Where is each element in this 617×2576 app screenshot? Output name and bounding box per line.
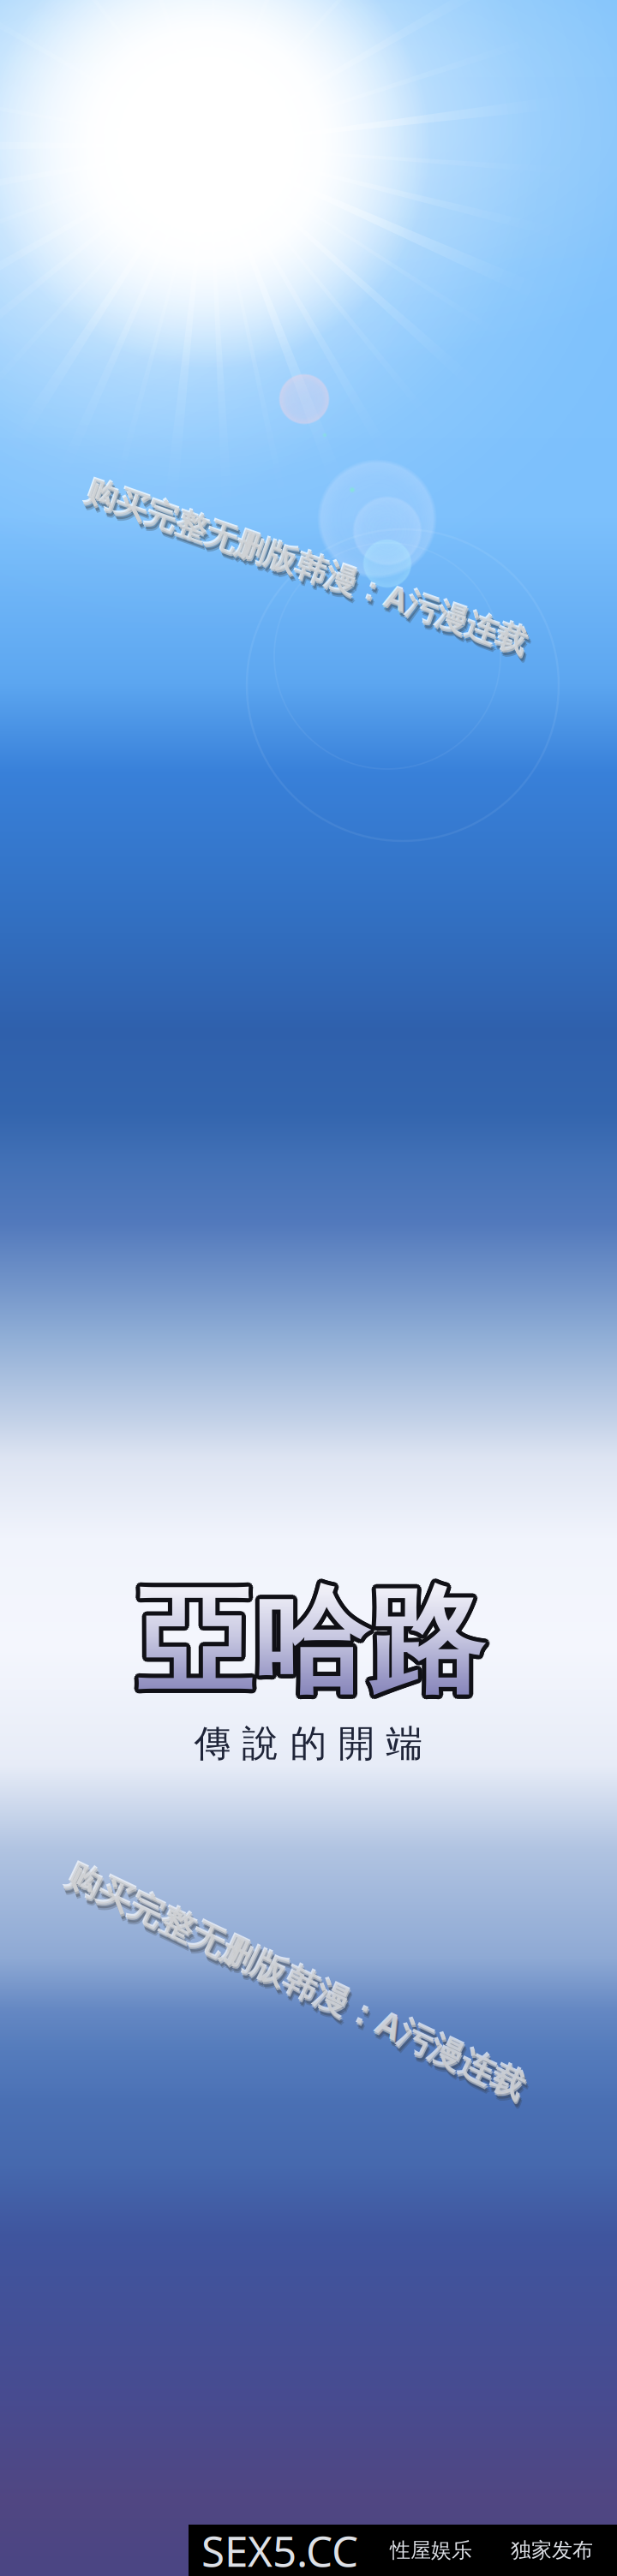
staticText: 亞哈路 <box>135 1576 482 1717</box>
staticText: 购买完整无删版韩漫：A污漫连载 <box>78 549 544 592</box>
staticText: 购买完整无删版韩漫：A污漫连载 <box>44 1957 548 2003</box>
staticText: 购买完整无删版韩漫：A污漫连载 <box>49 1962 553 2008</box>
staticText: 亞哈路 <box>138 1568 485 1709</box>
staticText: 亞哈路 <box>141 1573 488 1715</box>
staticText: 购买完整无删版韩漫：A污漫连载 <box>47 1961 551 2006</box>
staticText: 亞哈路 <box>141 1572 488 1713</box>
staticText: 亞哈路 <box>137 1576 484 1718</box>
button[interactable]: SEX5.CC 性屋娱乐 独家发布 <box>189 2525 617 2576</box>
staticText: 购买完整无删版韩漫：A污漫连载 <box>77 548 543 590</box>
staticText: 亞哈路 <box>134 1572 481 1713</box>
staticText: 购买完整无删版韩漫：A污漫连载 <box>75 546 541 588</box>
staticText: 亞哈路 <box>133 1570 480 1712</box>
staticText: 购买完整无删版韩漫：A污漫连载 <box>45 1959 549 2004</box>
staticText: 亞哈路 <box>132 1572 479 1713</box>
staticText: 亞哈路 <box>135 1568 482 1709</box>
staticText: 独家发布 <box>511 2538 593 2563</box>
staticText: 亞哈路 <box>139 1572 486 1713</box>
staticText: 亞哈路 <box>139 1574 486 1715</box>
staticText: 亞哈路 <box>134 1575 481 1716</box>
staticText: 亞哈路 <box>137 1567 484 1709</box>
staticText: 亞哈路 <box>139 1570 486 1711</box>
staticText: 亞哈路 <box>140 1569 487 1710</box>
staticText: 亞哈路 <box>141 1570 488 1712</box>
staticText: 购买完整无删版韩漫：A污漫连载 <box>73 544 539 587</box>
staticText: 亞哈路 <box>135 1570 482 1711</box>
staticText: 亞哈路 <box>137 1569 484 1711</box>
staticText: 亞哈路 <box>135 1574 482 1715</box>
staticText: SEX5.CC <box>201 2522 358 2576</box>
staticText: 亞哈路 <box>137 1574 484 1716</box>
staticText: 亞哈路 <box>140 1575 487 1716</box>
staticText: 性屋娱乐 <box>390 2538 472 2563</box>
staticText: 傳 說 的 開 端 <box>194 1721 423 1766</box>
staticText: 亞哈路 <box>138 1576 485 1717</box>
staticText: 亞哈路 <box>133 1573 480 1715</box>
staticText: 亞哈路 <box>134 1569 481 1710</box>
